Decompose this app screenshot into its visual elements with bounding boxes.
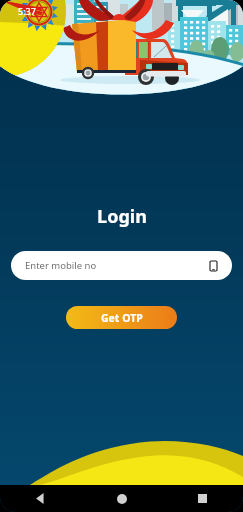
other: Mobile number — [210, 261, 217, 271]
button[interactable]: Enter mobile no — [11, 251, 232, 280]
button[interactable]: Recent apps — [162, 485, 243, 512]
button[interactable]: Get OTP — [66, 306, 177, 329]
button[interactable]: Home — [81, 485, 162, 512]
button[interactable]: Back — [0, 485, 81, 512]
staticText: Enter mobile no — [25, 259, 97, 272]
staticText: Login — [97, 204, 147, 229]
staticText: Get OTP — [101, 311, 143, 325]
staticText: 5:37 — [18, 5, 36, 17]
